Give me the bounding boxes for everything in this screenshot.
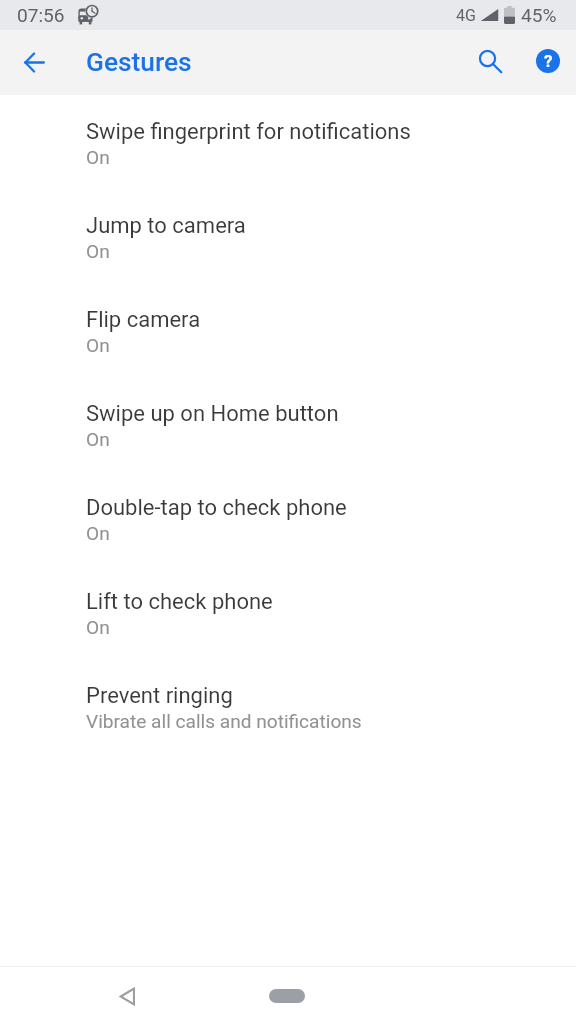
staticText: On bbox=[86, 334, 110, 356]
staticText: Jump to camera bbox=[86, 213, 246, 239]
staticText: On bbox=[86, 146, 110, 168]
button[interactable]: Swipe fingerprint for notifications bbox=[0, 111, 576, 205]
staticText: On bbox=[86, 240, 110, 262]
staticText: Swipe fingerprint for notifications bbox=[86, 119, 411, 145]
staticText: ? bbox=[544, 51, 553, 71]
button[interactable]: Flip camera bbox=[0, 299, 576, 393]
staticText: Swipe up on Home button bbox=[86, 401, 339, 427]
staticText: Double-tap to check phone bbox=[86, 495, 347, 521]
button[interactable]: Swipe up on Home button bbox=[0, 393, 576, 487]
button[interactable]: Jump to camera bbox=[0, 205, 576, 299]
button[interactable]: Back bbox=[0, 30, 68, 95]
staticText: Vibrate all calls and notifications bbox=[86, 710, 362, 732]
staticText: On bbox=[86, 616, 110, 638]
staticText: On bbox=[86, 428, 110, 450]
staticText: Lift to check phone bbox=[86, 589, 273, 615]
button[interactable]: Prevent ringing bbox=[0, 675, 576, 769]
button[interactable]: Lift to check phone bbox=[0, 581, 576, 675]
staticText: Flip camera bbox=[86, 307, 201, 333]
staticText: Prevent ringing bbox=[86, 683, 233, 709]
button[interactable]: Double-tap to check phone bbox=[0, 487, 576, 581]
button[interactable]: Back bbox=[106, 975, 148, 1017]
button[interactable]: Help bbox=[522, 35, 574, 87]
staticText: 07:56 bbox=[17, 4, 65, 26]
staticText: 4G bbox=[456, 6, 476, 25]
staticText: Gestures bbox=[86, 47, 192, 78]
button[interactable]: Home bbox=[269, 989, 305, 1003]
button[interactable]: Search bbox=[464, 35, 516, 87]
staticText: 45% bbox=[521, 4, 557, 26]
staticText: On bbox=[86, 522, 110, 544]
